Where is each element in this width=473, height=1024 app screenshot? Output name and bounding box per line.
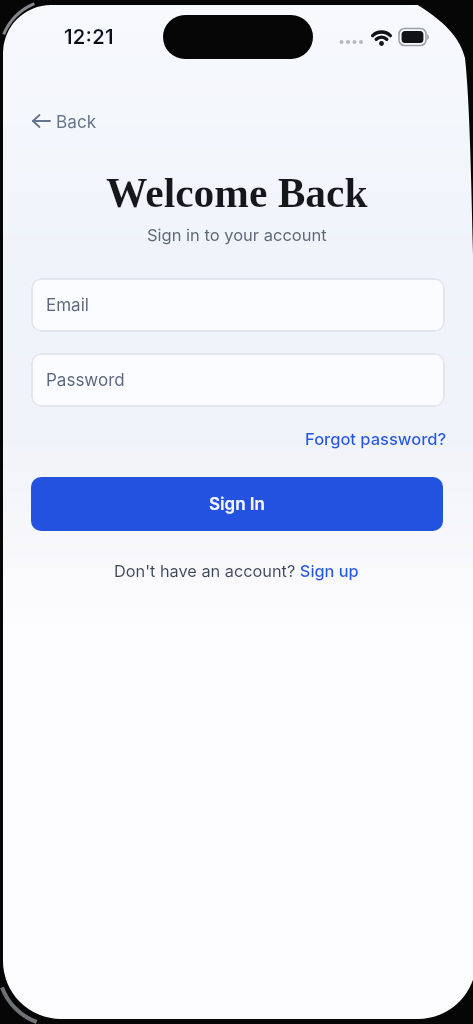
staticText: 12:21 <box>64 25 114 49</box>
button[interactable]: Email <box>31 278 445 332</box>
staticText: Back <box>56 111 97 132</box>
staticText: Sign in to your account <box>147 225 327 245</box>
button[interactable]: Forgot password? <box>305 429 447 449</box>
button[interactable]: Sign In <box>31 477 443 531</box>
button[interactable]: Back <box>27 105 103 137</box>
staticText: Password <box>46 370 125 391</box>
button[interactable]: Don't have an account? Sign up <box>114 561 359 581</box>
button[interactable]: Password <box>31 353 445 407</box>
staticText: Email <box>46 295 89 316</box>
staticText: Sign In <box>209 494 265 515</box>
staticText: Welcome Back <box>106 170 368 216</box>
